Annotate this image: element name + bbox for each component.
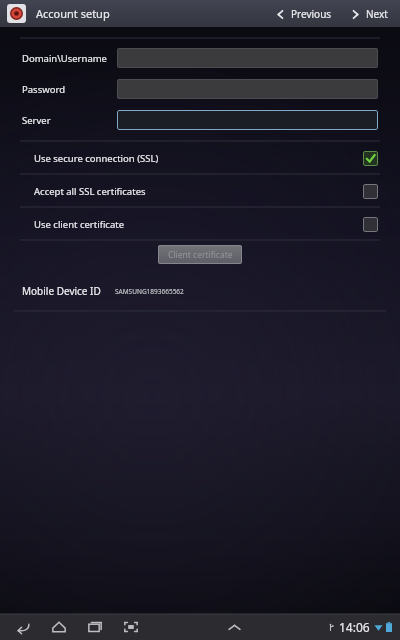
staticText: Mobile Device ID	[22, 284, 101, 298]
staticText: Next	[366, 7, 388, 21]
staticText: Accept all SSL certificates	[34, 185, 146, 198]
button[interactable]: Previous	[273, 5, 334, 23]
button[interactable]: Use secure connection (SSL)	[0, 142, 400, 174]
staticText: 14:06	[339, 619, 370, 635]
button[interactable]: Back	[12, 616, 34, 638]
button[interactable]: Home	[48, 616, 70, 638]
staticText: Account setup	[36, 6, 110, 21]
button[interactable]: Recent apps	[84, 616, 106, 638]
button[interactable]: App icon	[7, 4, 26, 23]
staticText: Client certificate	[168, 249, 233, 261]
button[interactable]: Next	[348, 5, 390, 23]
button[interactable]	[117, 48, 378, 68]
staticText: Use client certificate	[34, 218, 125, 231]
button[interactable]	[117, 79, 378, 99]
button[interactable]: Client certificate	[158, 245, 242, 264]
staticText: Server	[22, 114, 51, 127]
staticText: SAMSUNG1893665562	[115, 287, 184, 296]
button[interactable]	[117, 110, 378, 130]
button[interactable]: Use client certificate	[0, 208, 400, 240]
staticText: Use secure connection (SSL)	[34, 152, 159, 165]
staticText: Domain\Username	[22, 52, 107, 65]
staticText: Previous	[291, 7, 332, 21]
button[interactable]: Accept all SSL certificates	[0, 175, 400, 207]
button[interactable]: Screenshot	[120, 616, 142, 638]
staticText: Password	[22, 83, 65, 96]
button[interactable]: Show notifications	[224, 617, 244, 637]
